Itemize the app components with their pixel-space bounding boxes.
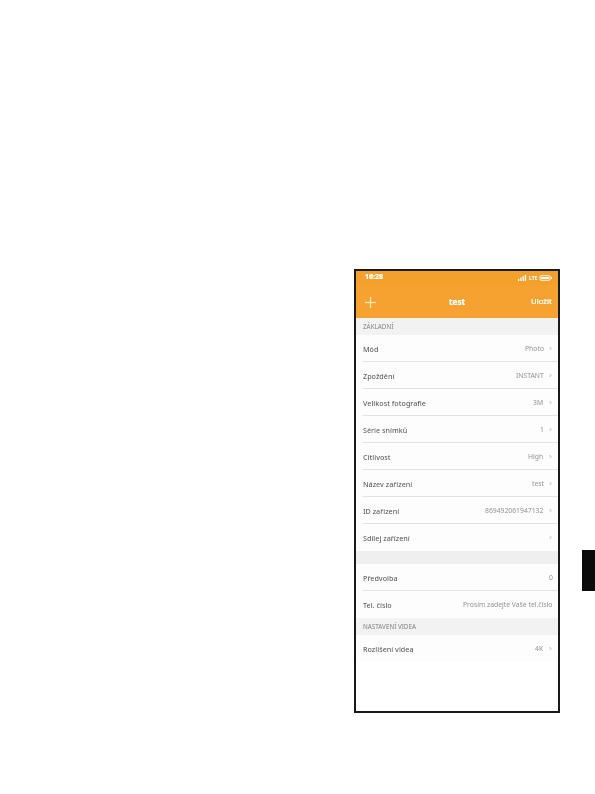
button[interactable]: ID zařízení: [354, 497, 560, 524]
button[interactable]: Uložit: [523, 290, 560, 313]
button[interactable]: Rozlišení videa: [354, 635, 560, 662]
button[interactable]: Velikost fotografie: [354, 389, 560, 416]
button[interactable]: Série snímků: [354, 416, 560, 443]
staticText: Sdílej zařízení: [363, 533, 410, 543]
staticText: ID zařízení: [363, 506, 400, 516]
staticText: Citlivost: [363, 452, 391, 462]
button[interactable]: Název zařízení: [354, 470, 560, 497]
button[interactable]: Zpoždění: [354, 362, 560, 389]
staticText: Photo: [525, 344, 544, 353]
staticText: Mód: [363, 344, 379, 354]
staticText: Velikost fotografie: [363, 398, 426, 408]
staticText: Tel. číslo: [363, 600, 392, 610]
staticText: Uložit: [531, 296, 552, 307]
staticText: Název zařízení: [363, 479, 413, 489]
staticText: test: [532, 479, 544, 488]
button[interactable]: Sdílej zařízení: [354, 524, 560, 551]
button[interactable]: Tel. číslo: [354, 591, 560, 618]
staticText: 0: [549, 573, 553, 582]
staticText: 869492061947132: [485, 506, 544, 515]
staticText: INSTANT: [516, 371, 544, 380]
staticText: ZÁKLADNÍ: [363, 322, 394, 331]
staticText: NASTAVENÍ VIDEA: [363, 622, 416, 631]
staticText: Prosím zadejte Vaše tel.číslo: [463, 600, 553, 609]
staticText: High: [528, 452, 544, 461]
staticText: Rozlišení videa: [363, 644, 414, 654]
button[interactable]: Mód: [354, 335, 560, 362]
staticText: 1: [540, 425, 544, 434]
staticText: LTE: [529, 274, 538, 281]
button[interactable]: Add: [360, 292, 380, 312]
staticText: test: [449, 296, 466, 307]
button[interactable]: Citlivost: [354, 443, 560, 470]
staticText: 16:28: [365, 272, 383, 282]
button[interactable]: Předvolba: [354, 564, 560, 591]
staticText: 3M: [533, 398, 544, 407]
staticText: Předvolba: [363, 573, 398, 583]
staticText: 4K: [535, 644, 544, 653]
staticText: Zpoždění: [363, 371, 395, 381]
staticText: Série snímků: [363, 425, 408, 435]
